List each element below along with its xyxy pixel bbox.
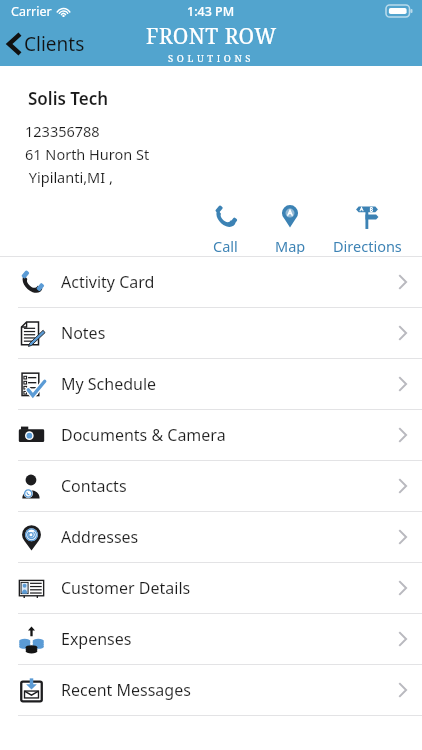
- staticText: Recent Messages: [61, 679, 191, 701]
- staticText: Call: [213, 236, 238, 254]
- button[interactable]: My Schedule: [0, 359, 422, 409]
- staticText: 1:43 PM: [187, 3, 235, 20]
- button[interactable]: Map: [256, 200, 324, 256]
- button[interactable]: Contacts: [0, 461, 422, 511]
- staticText: Expenses: [61, 628, 132, 650]
- staticText: Addresses: [61, 526, 139, 548]
- button[interactable]: Expenses: [0, 614, 422, 664]
- staticText: Documents & Camera: [61, 424, 226, 446]
- button[interactable]: Customer Details: [0, 563, 422, 613]
- staticText: Activity Card: [61, 271, 155, 293]
- staticText: Directions: [333, 236, 402, 254]
- staticText: Clients: [24, 31, 85, 57]
- staticText: 61 North Huron St: [25, 144, 150, 164]
- button[interactable]: Documents & Camera: [0, 410, 422, 460]
- staticText: 123356788: [25, 121, 100, 141]
- button[interactable]: Recent Messages: [0, 665, 422, 715]
- staticText: Customer Details: [61, 577, 191, 599]
- staticText: Solis Tech: [28, 87, 109, 110]
- button[interactable]: Clients: [0, 26, 97, 62]
- button[interactable]: Addresses: [0, 512, 422, 562]
- staticText: Notes: [61, 322, 106, 344]
- staticText: FRONT ROW: [146, 22, 277, 51]
- button[interactable]: Notes: [0, 308, 422, 358]
- staticText: SOLUTIONS: [168, 52, 255, 65]
- staticText: Contacts: [61, 475, 127, 497]
- button[interactable]: Activity Card: [0, 257, 422, 307]
- staticText: My Schedule: [61, 373, 157, 395]
- staticText: Carrier: [11, 3, 52, 20]
- staticText: Yipilanti,MI ,: [25, 167, 113, 187]
- button[interactable]: Directions: [324, 200, 410, 256]
- staticText: Map: [275, 236, 306, 254]
- button[interactable]: Call: [194, 200, 256, 256]
